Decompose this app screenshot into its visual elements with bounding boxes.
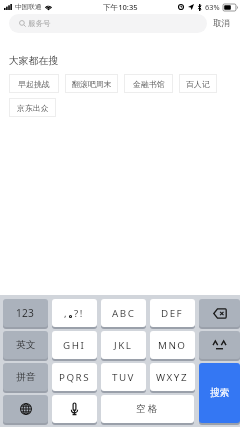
button[interactable]: WXYZ	[150, 363, 195, 391]
staticText: 中国联通	[15, 3, 42, 11]
button[interactable]: GHI	[52, 331, 97, 359]
staticText: 京东出众	[17, 103, 49, 113]
staticText: PQRS	[59, 371, 91, 384]
button[interactable]: 百人记	[179, 74, 217, 93]
button[interactable]: 京东出众	[9, 98, 56, 117]
staticText: 金融书馆	[133, 79, 165, 89]
button[interactable]: MNO	[150, 331, 195, 359]
staticText: 拼音	[16, 371, 36, 383]
button[interactable]: 拼音	[3, 363, 48, 391]
staticText: 翻滚吧周末	[72, 79, 112, 89]
staticText: 大家都在搜	[9, 55, 58, 67]
staticText: WXYZ	[156, 371, 189, 384]
button[interactable]: 搜索	[199, 363, 240, 423]
button[interactable]: ,	[52, 299, 97, 327]
staticText: 空格	[136, 403, 160, 415]
button[interactable]: 金融书馆	[124, 74, 173, 93]
button[interactable]: Voice input	[52, 395, 97, 423]
staticText: ?!	[74, 307, 85, 320]
button[interactable]: Emoji	[199, 331, 240, 359]
button[interactable]: PQRS	[52, 363, 97, 391]
staticText: DEF	[161, 307, 184, 320]
staticText: ABC	[112, 307, 136, 320]
button[interactable]: 取消	[208, 18, 235, 29]
button[interactable]: JKL	[101, 331, 146, 359]
button[interactable]: Switch language	[3, 395, 48, 423]
staticText: 百人记	[186, 79, 210, 89]
staticText: GHI	[63, 339, 86, 352]
button[interactable]: 123	[3, 299, 48, 327]
button[interactable]: ABC	[101, 299, 146, 327]
button[interactable]: 空格	[101, 395, 194, 423]
staticText: 搜索	[210, 387, 230, 399]
staticText: 服务号	[28, 19, 51, 28]
staticText: JKL	[114, 339, 133, 352]
staticText: 英文	[16, 339, 36, 351]
button[interactable]: 服务号	[9, 14, 207, 33]
staticText: MNO	[158, 339, 187, 352]
staticText: ,	[64, 307, 67, 320]
button[interactable]: Backspace	[199, 299, 240, 327]
staticText: 取消	[213, 18, 230, 29]
staticText: 早起挑战	[18, 79, 50, 89]
staticText: TUV	[112, 371, 135, 384]
button[interactable]: DEF	[150, 299, 195, 327]
button[interactable]: 翻滚吧周末	[65, 74, 118, 93]
button[interactable]: TUV	[101, 363, 146, 391]
staticText: 63%	[205, 2, 220, 12]
button[interactable]: 早起挑战	[9, 74, 59, 93]
staticText: 下午10:35	[103, 2, 138, 12]
button[interactable]: 英文	[3, 331, 48, 359]
staticText: 123	[16, 306, 35, 320]
